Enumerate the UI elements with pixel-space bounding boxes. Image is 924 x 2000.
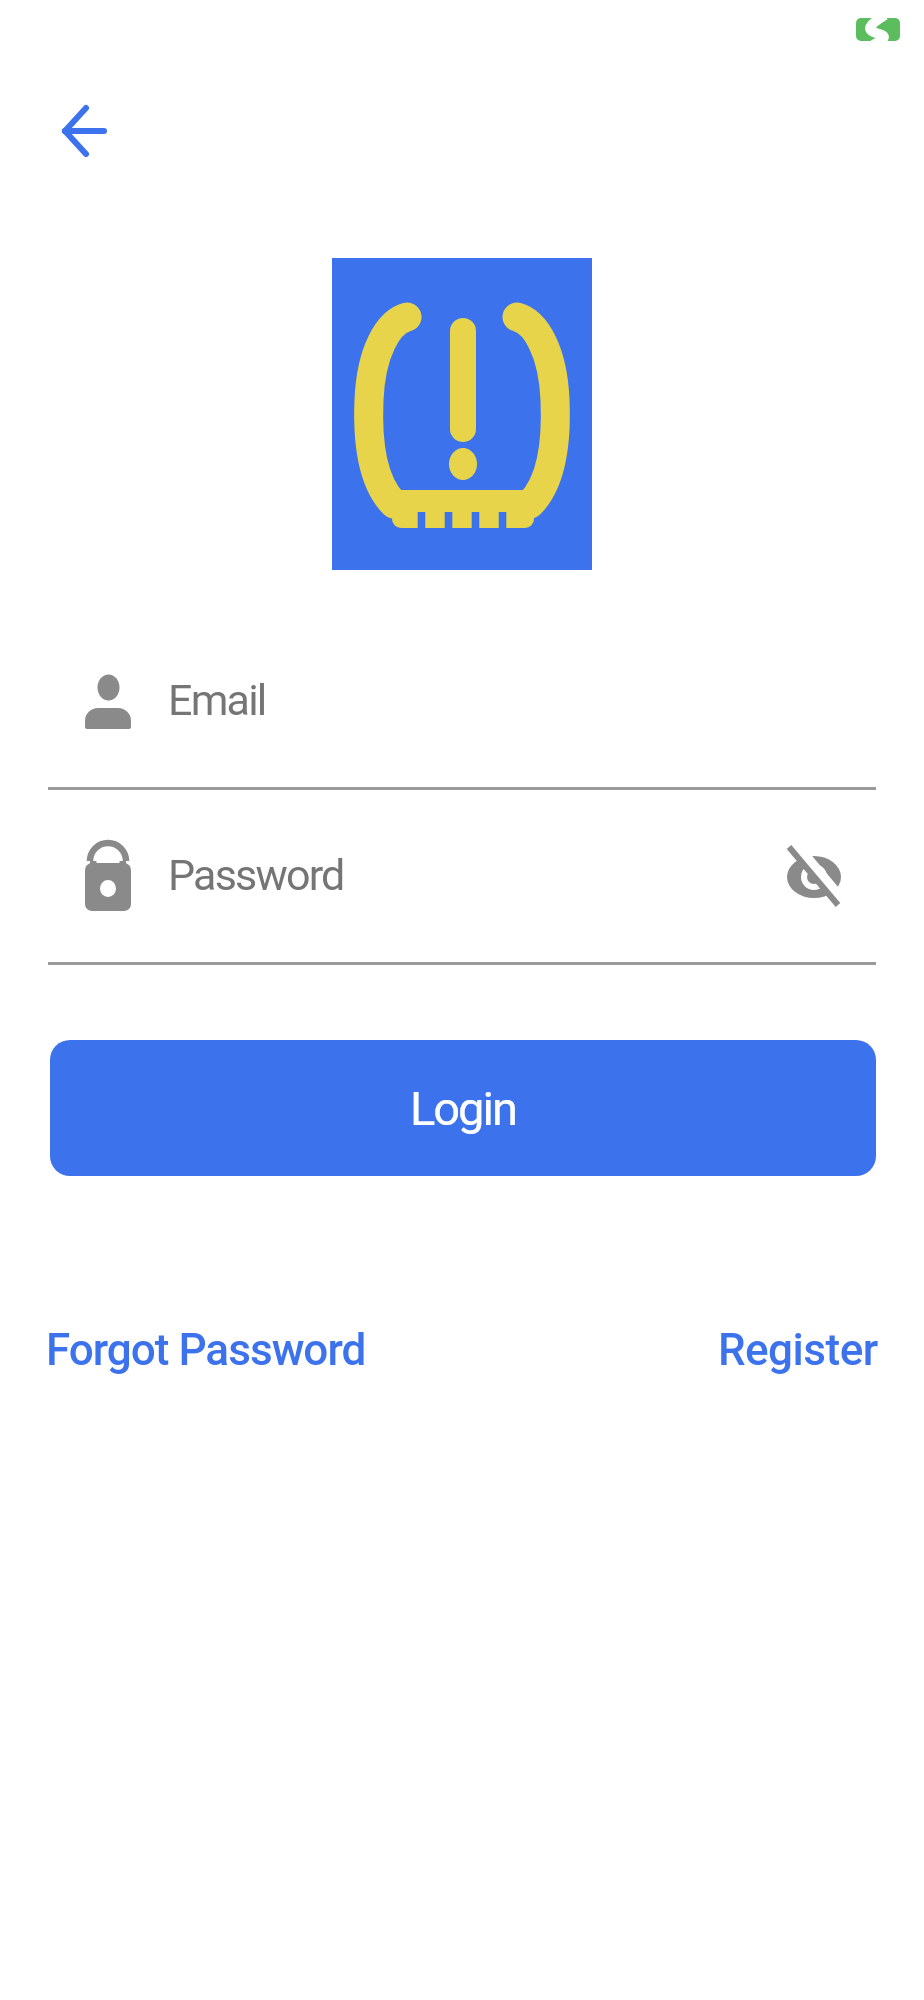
button[interactable]: Register [718, 1324, 878, 1376]
button[interactable]: Email [48, 662, 876, 737]
button[interactable]: Login [50, 1040, 876, 1176]
button[interactable] [48, 95, 120, 167]
button[interactable]: Password [48, 837, 876, 912]
staticText: Password [168, 850, 344, 900]
staticText: Email [168, 675, 266, 725]
button[interactable] [778, 841, 850, 913]
staticText: Forgot Password [46, 1324, 366, 1376]
button[interactable]: Forgot Password [46, 1318, 366, 1382]
staticText: Login [410, 1081, 516, 1136]
staticText: Register [718, 1324, 878, 1376]
